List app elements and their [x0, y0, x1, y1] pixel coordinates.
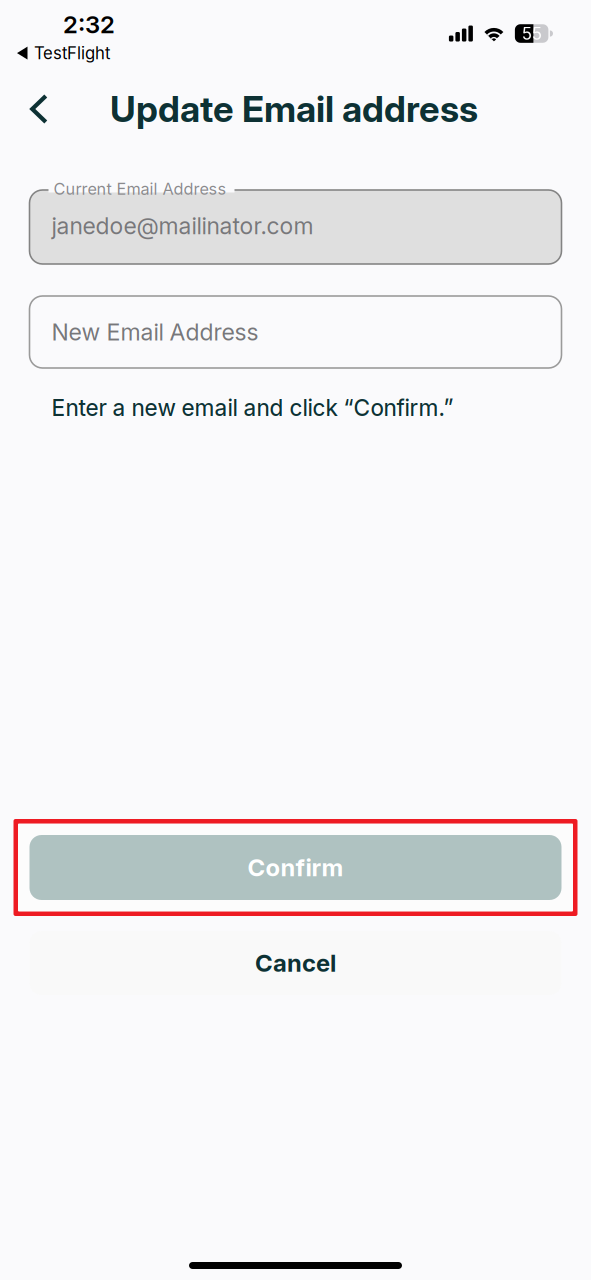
button[interactable]: Back to TestFlight: [17, 43, 110, 63]
staticText: New Email Address: [51, 318, 258, 346]
staticText: Cancel: [255, 948, 336, 977]
staticText: Enter a new email and click “Confirm.”: [51, 394, 453, 421]
staticText: TestFlight: [34, 43, 110, 63]
staticText: 2:32: [63, 10, 115, 39]
staticText: Confirm: [247, 853, 343, 882]
button[interactable]: Cancel: [29, 931, 561, 995]
staticText: Current Email Address: [53, 179, 226, 199]
button[interactable]: Back: [16, 83, 62, 135]
staticText: janedoe@mailinator.com: [51, 212, 313, 240]
button[interactable]: New Email Address: [29, 296, 561, 368]
button[interactable]: Current Email Address: [29, 190, 561, 264]
button[interactable]: Confirm: [13, 819, 577, 916]
staticText: 55: [522, 23, 542, 44]
staticText: Update Email address: [110, 87, 478, 131]
